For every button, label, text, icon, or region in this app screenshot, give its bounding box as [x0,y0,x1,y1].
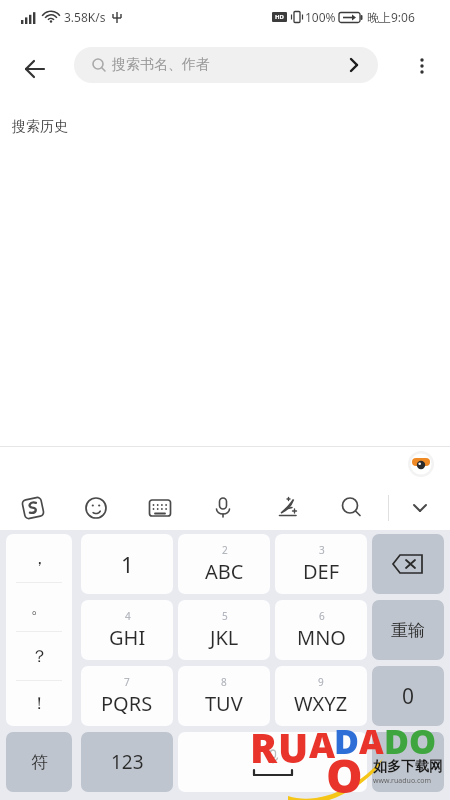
staticText: U [278,720,309,774]
button[interactable]: 符 [6,732,72,792]
staticText: 7 [124,675,130,689]
staticText: D [334,718,359,764]
staticText: ， [31,548,48,569]
staticText: 100% [305,9,336,25]
button[interactable]: Keyboard layout [145,493,175,523]
staticText: R [250,720,278,774]
button[interactable]: Voice input [208,493,238,523]
staticText: 4 [125,609,131,623]
button[interactable]: 搜索书名、作者 [74,47,378,83]
staticText: 0 [402,682,415,711]
button[interactable]: 重输 [372,600,444,660]
button[interactable] [372,534,444,594]
button[interactable]: 2 [178,534,270,594]
staticText: 1 [121,549,134,579]
staticText: 搜索书名、作者 [112,56,210,74]
staticText: HD [275,13,284,21]
staticText: ？ [31,646,48,667]
staticText: 2 [222,543,228,557]
button[interactable]: 3 [275,534,367,594]
staticText: D [384,718,409,764]
button[interactable]: 123 [81,732,173,792]
button[interactable]: Emoji [81,493,111,523]
staticText: 晚上9:06 [367,9,415,25]
button[interactable]: 8 [178,666,270,726]
button[interactable]: Sogou input [18,493,48,523]
staticText: PQRS [101,690,153,717]
staticText: A [359,718,384,764]
button[interactable]: 1 [81,534,173,594]
staticText: 3.58K/s [64,9,106,25]
staticText: 。 [31,597,48,618]
staticText: ！ [31,693,48,714]
staticText: ABC [205,558,244,585]
button[interactable]: Assistant [406,449,436,479]
staticText: 123 [111,749,144,775]
button[interactable]: 6 [275,600,367,660]
staticText: JKL [210,624,239,651]
button[interactable] [372,732,444,792]
staticText: 9 [318,675,324,689]
staticText: A [309,720,336,769]
staticText: O [409,718,437,764]
button[interactable]: 0 [372,666,444,726]
button[interactable]: Back [14,48,56,90]
button[interactable]: 5 [178,600,270,660]
button[interactable]: Search [337,493,367,523]
button[interactable]: 7 [81,666,173,726]
staticText: www.ruaduo.com [373,776,432,786]
staticText: 符 [31,752,48,773]
staticText: DEF [303,558,340,585]
staticText: 6 [319,609,325,623]
staticText: 如多下载网 [373,758,443,776]
button[interactable]: ， [6,534,72,726]
staticText: WXYZ [294,690,348,717]
staticText: MNO [297,624,346,651]
button[interactable] [178,732,367,792]
button[interactable]: 9 [275,666,367,726]
staticText: 5 [222,609,228,623]
staticText: GHI [109,624,146,651]
button[interactable]: Handwriting [274,493,304,523]
staticText: O [326,744,363,800]
staticText: 3 [319,543,325,557]
staticText: 搜索历史 [12,118,68,136]
staticText: TUV [205,690,243,717]
button[interactable]: 4 [81,600,173,660]
staticText: 8 [221,675,227,689]
button[interactable]: More options [404,48,440,84]
staticText: 重输 [391,620,425,641]
button[interactable]: Hide keyboard [405,493,435,523]
